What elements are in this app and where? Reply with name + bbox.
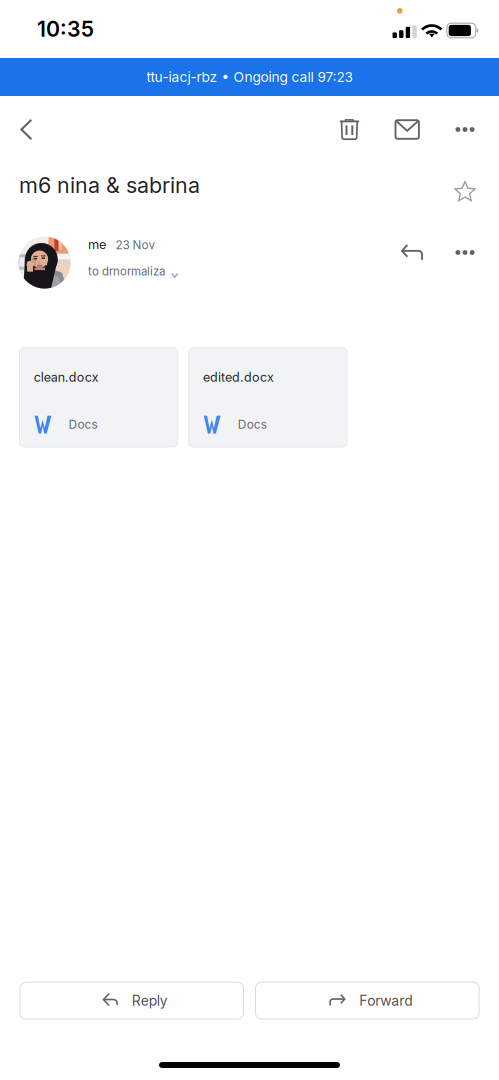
staticText: Docs — [238, 417, 267, 432]
button[interactable]: More options — [437, 96, 493, 163]
staticText: 10:35 — [37, 16, 94, 42]
button[interactable]: Reply — [383, 236, 441, 268]
button[interactable]: Mark as unread — [379, 96, 435, 163]
staticText: to drnormaliza — [88, 264, 165, 278]
button[interactable]: clean.docx — [19, 347, 178, 447]
staticText: m6 nina & sabrina — [19, 172, 200, 198]
button[interactable]: Forward — [255, 982, 479, 1019]
button[interactable]: Star — [444, 178, 486, 204]
staticText: me — [88, 236, 106, 252]
staticText: ttu-iacj-rbz • Ongoing call 97:23 — [146, 69, 352, 85]
button[interactable]: edited.docx — [189, 347, 347, 447]
staticText: Forward — [359, 992, 412, 1009]
button[interactable]: More options — [441, 236, 489, 268]
staticText: edited.docx — [203, 369, 274, 385]
staticText: 23 Nov — [115, 238, 155, 252]
button[interactable]: Delete — [321, 96, 377, 163]
staticText: clean.docx — [34, 369, 99, 385]
staticText: Docs — [68, 417, 97, 432]
button[interactable]: Back — [0, 96, 53, 163]
button[interactable]: to drnormaliza — [88, 264, 178, 278]
staticText: Reply — [132, 992, 168, 1009]
button[interactable]: Reply — [20, 982, 243, 1019]
